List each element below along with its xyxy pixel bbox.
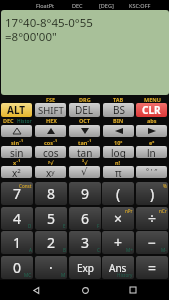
staticText: % [163,183,167,189]
staticText: log [111,146,126,158]
staticText: × [114,209,123,228]
button[interactable]: Left [103,125,134,137]
button[interactable] [69,256,101,279]
staticText: 6 [81,209,90,228]
button[interactable] [35,146,66,158]
staticText: ) [150,184,155,203]
button[interactable] [69,207,101,230]
button[interactable]: Back [24,280,48,300]
staticText: ÷ [148,209,157,228]
staticText: √ [81,166,88,178]
button[interactable]: Scroll up [1,125,32,137]
staticText: tan⁻¹ [78,139,92,146]
staticText: xʸ [46,166,55,178]
staticText: eˣ [149,139,155,146]
staticText: n! [115,159,121,166]
staticText: 10ˣ [114,139,123,146]
button[interactable] [103,103,134,117]
button[interactable]: Recents [121,280,145,300]
button[interactable] [136,231,168,254]
staticText: 9 [81,184,90,203]
staticText: sin [10,146,24,158]
staticText: ALT [7,103,26,117]
staticText: · [49,258,53,277]
staticText: ʸ√ [48,159,54,166]
staticText: cos⁻¹ [44,139,58,146]
staticText: Ans [109,261,127,275]
staticText: DEL [75,103,94,117]
staticText: MC [24,272,32,278]
button[interactable] [1,256,33,279]
button[interactable] [1,231,33,254]
staticText: =8°00'00" [5,29,57,45]
button[interactable] [69,146,100,158]
staticText: nCr [159,208,167,214]
button[interactable] [102,231,134,254]
button[interactable] [136,146,167,158]
staticText: DEC [3,117,14,124]
button[interactable] [102,207,134,230]
staticText: FSE [46,96,56,103]
staticText: BIN [113,117,124,124]
button[interactable] [69,166,100,178]
staticText: Exp [77,261,94,275]
button[interactable] [35,256,67,279]
button[interactable] [35,231,67,254]
button[interactable] [1,146,32,158]
staticText: x⁻¹ [13,159,21,166]
staticText: 1 [13,233,22,252]
button[interactable] [1,103,32,117]
staticText: 5 [47,209,56,228]
staticText: abs [147,117,157,124]
button[interactable] [69,182,101,205]
staticText: 2 [47,233,56,252]
staticText: DRG [79,96,91,103]
button[interactable] [136,182,168,205]
staticText: DEC [72,2,83,9]
staticText: A [29,247,32,253]
button[interactable] [35,207,67,230]
button[interactable] [35,103,66,117]
staticText: M+ [126,247,133,253]
staticText: 3 [81,233,90,252]
button[interactable] [102,182,134,205]
staticText: x² [12,166,21,178]
staticText: [DEG] [99,2,114,9]
button[interactable] [1,207,33,230]
button[interactable] [69,103,100,117]
staticText: 8 [47,184,56,203]
staticText: ³√ [82,159,88,166]
button[interactable] [102,256,134,279]
staticText: KSC:OFF [129,2,151,9]
staticText: π [115,166,122,178]
staticText: 7 [13,184,22,203]
button[interactable] [69,231,101,254]
staticText: MENU [144,96,161,103]
staticText: cos [43,146,59,158]
staticText: 0 [13,258,22,277]
staticText: History [17,118,34,125]
staticText: HEX [46,117,57,124]
staticText: ln [147,146,156,158]
button[interactable] [1,166,32,178]
staticText: nPr [125,208,133,214]
button[interactable]: Right [136,125,167,137]
button[interactable] [35,182,67,205]
button[interactable] [1,182,33,205]
button[interactable] [136,256,168,279]
staticText: + [114,233,123,252]
staticText: TAB [113,96,124,103]
button[interactable] [136,103,167,117]
staticText: M- [161,247,167,253]
button[interactable]: Up [35,125,66,137]
button[interactable]: Down [69,125,100,137]
button[interactable] [35,166,66,178]
staticText: History [117,272,133,278]
button[interactable] [103,166,134,178]
button[interactable]: Home [73,280,97,300]
button[interactable] [136,207,168,230]
button[interactable] [103,146,134,158]
staticText: M [61,272,66,278]
button[interactable] [136,166,167,178]
staticText: BS [113,103,125,117]
